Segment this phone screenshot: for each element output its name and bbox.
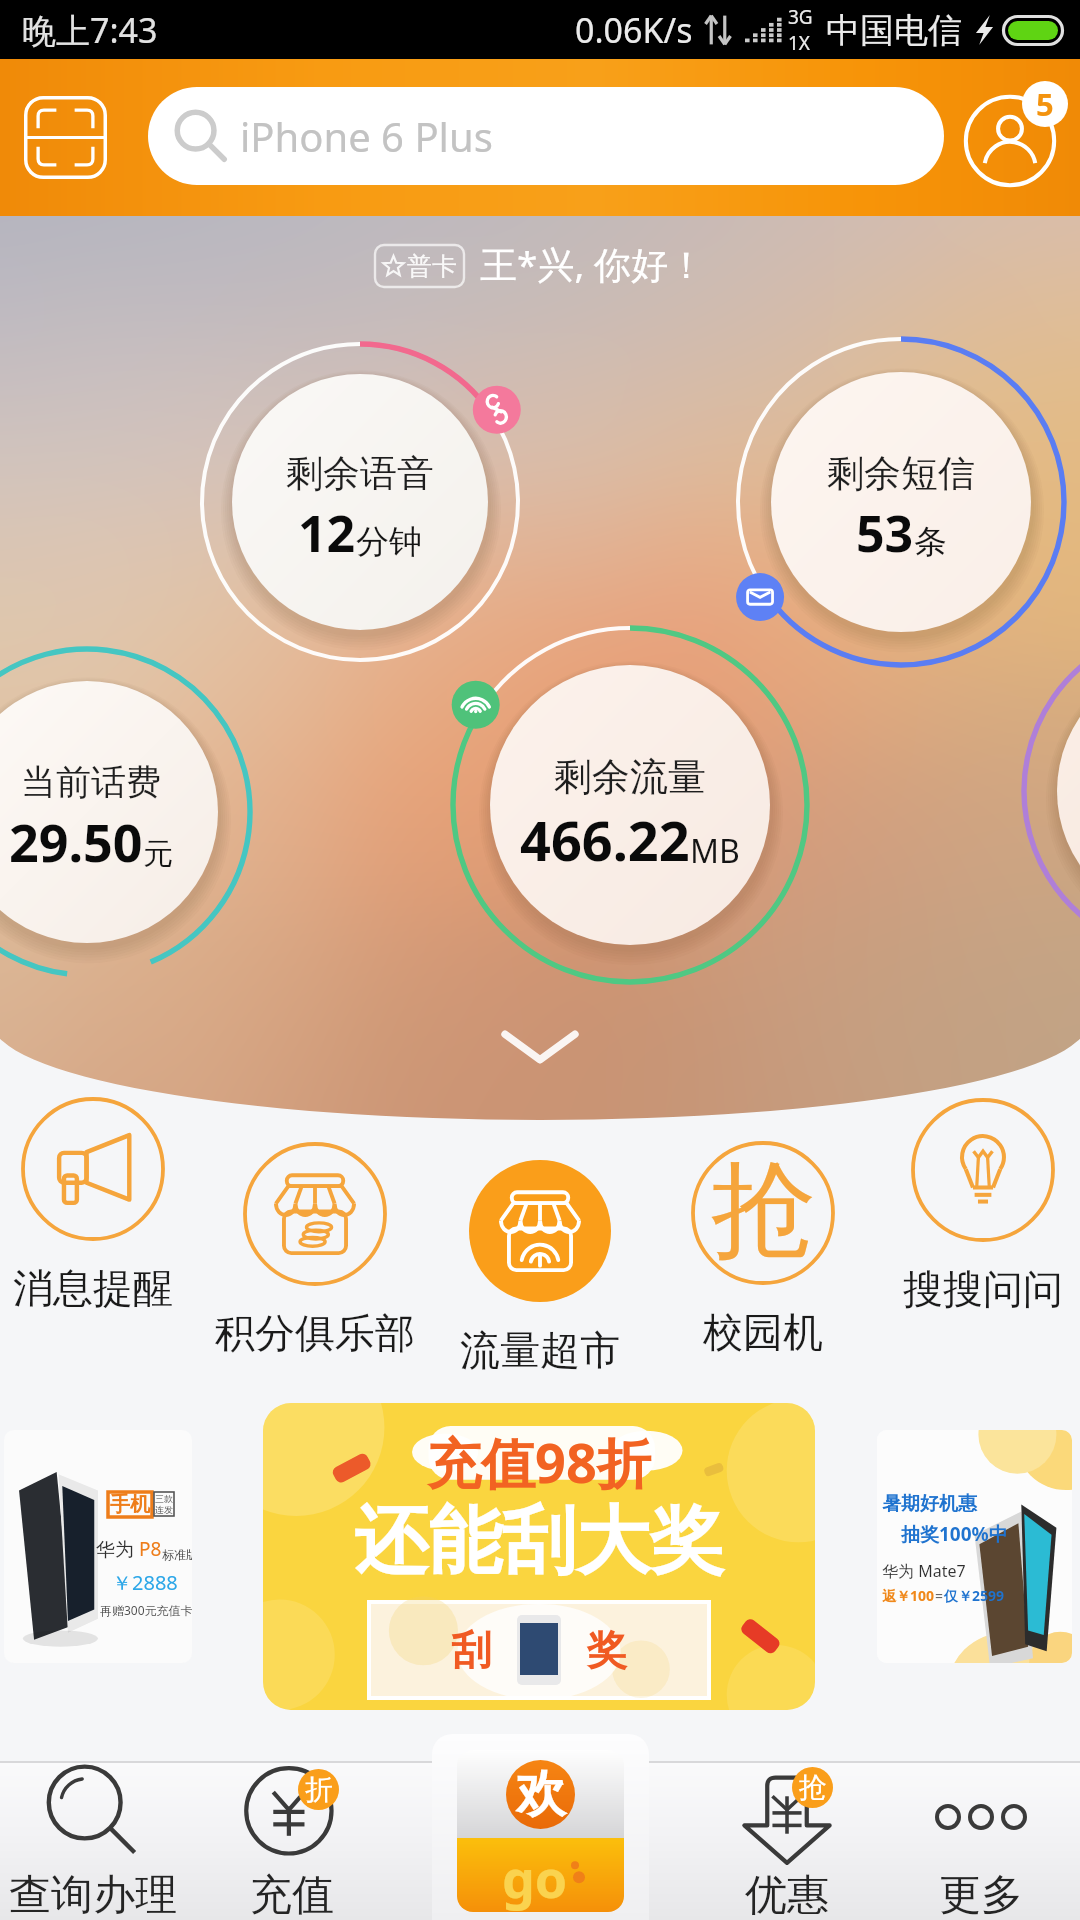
staticText: 29.50: [9, 806, 143, 877]
staticText: ￥2888: [112, 1569, 178, 1596]
staticText: 返￥100: [882, 1586, 935, 1605]
staticText: 连发: [155, 1504, 173, 1515]
staticText: iPhone 6 Plus: [240, 109, 493, 163]
button[interactable]: 暑期好机惠: [877, 1430, 1072, 1663]
staticText: 华为 Mate7: [882, 1560, 966, 1582]
staticText: 校园机: [703, 1307, 823, 1357]
staticText: 搜搜问问: [903, 1264, 1063, 1314]
button[interactable]: 更多: [881, 1763, 1080, 1920]
button[interactable]: 流量超市: [415, 1159, 665, 1375]
staticText: 条: [914, 521, 947, 563]
staticText: 普卡: [407, 251, 457, 282]
button[interactable]: 消息提醒: [0, 1097, 218, 1313]
staticText: 抢: [799, 1770, 827, 1805]
staticText: 元: [143, 835, 173, 873]
staticText: 王*兴, 你好！: [480, 238, 705, 289]
staticText: 暑期好机惠: [882, 1492, 977, 1516]
staticText: 折: [305, 1772, 333, 1807]
staticText: =: [935, 1586, 944, 1605]
staticText: 12: [298, 499, 356, 567]
button[interactable]: 充值98折: [263, 1403, 815, 1710]
staticText: 53: [856, 499, 914, 567]
staticText: 华为: [96, 1536, 139, 1562]
button[interactable]: 积分俱乐部: [190, 1142, 440, 1358]
staticText: MB: [690, 829, 740, 873]
staticText: 流量超市: [460, 1325, 620, 1375]
button[interactable]: iPhone 6 Plus: [148, 87, 944, 185]
button[interactable]: My account: [962, 81, 1070, 189]
staticText: 手机: [110, 1492, 150, 1517]
staticText: 消息提醒: [13, 1263, 173, 1313]
button[interactable]: Scan code: [10, 82, 120, 192]
staticText: go: [502, 1842, 568, 1912]
button[interactable]: 抢: [687, 1763, 887, 1920]
staticText: P8: [139, 1536, 162, 1562]
staticText: 充值98折: [427, 1425, 651, 1499]
staticText: 剩余短信: [827, 450, 975, 497]
staticText: 标准版: [162, 1547, 192, 1562]
staticText: 中国电信: [826, 9, 962, 52]
staticText: 刮: [451, 1625, 491, 1675]
staticText: 3G: [788, 4, 813, 30]
staticText: 还能刮大奖: [354, 1495, 724, 1588]
button[interactable]: 查询办理: [0, 1763, 193, 1920]
staticText: 积分俱乐部: [215, 1308, 415, 1358]
button[interactable]: 抢: [638, 1141, 888, 1357]
staticText: 充值: [250, 1869, 334, 1920]
staticText: 奖: [587, 1625, 627, 1675]
staticText: 抢: [711, 1145, 816, 1277]
button[interactable]: 折: [192, 1763, 392, 1920]
staticText: 晚上7:43: [22, 7, 158, 53]
staticText: 优惠: [745, 1869, 829, 1920]
staticText: 再赠300元充值卡: [100, 1602, 192, 1618]
staticText: 1X: [788, 30, 811, 56]
staticText: 剩余语音: [286, 450, 434, 497]
staticText: 查询办理: [9, 1869, 177, 1920]
staticText: 0.06K/s: [575, 7, 693, 53]
staticText: 仅￥2599: [944, 1586, 1005, 1605]
staticText: 466.22: [520, 803, 690, 877]
staticText: 5: [1036, 83, 1054, 125]
staticText: 剩余流量: [554, 753, 706, 801]
staticText: 分钟: [356, 521, 422, 563]
staticText: 当前话费: [21, 760, 161, 804]
staticText: 抽奖100%中: [901, 1521, 1008, 1547]
button[interactable]: 手机: [4, 1430, 192, 1663]
button[interactable]: 搜搜问问: [858, 1098, 1080, 1314]
button[interactable]: Huan Go: [432, 1734, 649, 1920]
staticText: 三款: [155, 1493, 173, 1504]
staticText: 更多: [939, 1869, 1023, 1920]
staticText: 欢: [516, 1763, 566, 1826]
